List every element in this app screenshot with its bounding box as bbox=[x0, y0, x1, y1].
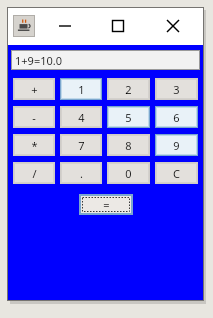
button[interactable]: + bbox=[13, 78, 55, 100]
button[interactable]: C bbox=[155, 162, 198, 184]
button[interactable]: 7 bbox=[60, 134, 102, 156]
staticText: * bbox=[31, 138, 38, 153]
staticText: 2 bbox=[125, 82, 132, 97]
staticText: / bbox=[32, 166, 37, 181]
staticText: . bbox=[80, 166, 83, 181]
staticText: 9 bbox=[173, 138, 180, 153]
staticText: + bbox=[31, 82, 38, 97]
staticText: 0 bbox=[125, 166, 132, 181]
staticText: - bbox=[32, 110, 36, 125]
staticText: = bbox=[103, 197, 110, 212]
button[interactable]: 8 bbox=[107, 134, 150, 156]
button[interactable]: - bbox=[13, 106, 55, 128]
button[interactable]: Minimize bbox=[47, 11, 83, 41]
staticText: 7 bbox=[78, 138, 85, 153]
staticText: 6 bbox=[173, 110, 180, 125]
button[interactable]: = bbox=[79, 194, 133, 215]
button[interactable]: 0 bbox=[107, 162, 150, 184]
button[interactable]: Maximize bbox=[100, 11, 136, 41]
button[interactable]: . bbox=[60, 162, 102, 184]
button[interactable]: 6 bbox=[155, 106, 198, 128]
button[interactable]: 1 bbox=[60, 78, 102, 100]
button[interactable]: 5 bbox=[107, 106, 150, 128]
button[interactable]: 9 bbox=[155, 134, 198, 156]
staticText: 8 bbox=[125, 138, 132, 153]
button[interactable]: * bbox=[13, 134, 55, 156]
other: Application icon bbox=[13, 15, 35, 37]
button[interactable]: / bbox=[13, 162, 55, 184]
staticText: 1 bbox=[78, 82, 85, 97]
button[interactable]: 4 bbox=[60, 106, 102, 128]
staticText: 4 bbox=[78, 110, 85, 125]
staticText: 5 bbox=[125, 110, 132, 125]
staticText: 1+9=10.0 bbox=[15, 53, 62, 68]
button[interactable]: 3 bbox=[155, 78, 198, 100]
staticText: C bbox=[173, 166, 180, 181]
button[interactable]: 2 bbox=[107, 78, 150, 100]
button[interactable]: Close bbox=[155, 11, 191, 41]
staticText: 3 bbox=[173, 82, 180, 97]
button[interactable]: 1+9=10.0 bbox=[11, 50, 200, 70]
